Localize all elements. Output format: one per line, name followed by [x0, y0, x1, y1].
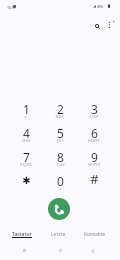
button[interactable]: Kontakte — [76, 231, 114, 241]
staticText: Letzte — [51, 231, 66, 238]
button[interactable]: Letzte — [39, 231, 77, 241]
button[interactable]: More options — [102, 18, 118, 34]
button[interactable]: 9 — [77, 147, 111, 171]
staticText: ∞ — [24, 114, 28, 119]
button[interactable]: Recents — [14, 243, 34, 260]
staticText: 49% — [97, 5, 104, 9]
staticText: 3 — [91, 101, 98, 117]
button[interactable]: 6 — [77, 123, 111, 147]
staticText: 16:37 — [7, 5, 16, 9]
button[interactable]: 7 — [9, 147, 43, 171]
staticText: GHI — [22, 138, 31, 144]
staticText: 8 — [57, 149, 64, 165]
staticText: WXYZ — [88, 162, 101, 168]
button[interactable]: Home — [50, 243, 70, 260]
staticText: 4 — [23, 125, 30, 141]
button[interactable]: Tastatur — [3, 231, 41, 241]
staticText: ABC — [55, 114, 65, 120]
button[interactable]: 8 — [43, 147, 77, 171]
staticText: DEF — [90, 114, 99, 120]
staticText: MNO — [88, 138, 100, 144]
button[interactable]: # — [77, 171, 111, 195]
staticText: 9 — [91, 149, 98, 165]
staticText: TUV — [56, 162, 65, 168]
staticText: 0 — [57, 173, 64, 189]
staticText: 5 — [57, 125, 64, 141]
button[interactable]: Call — [48, 198, 70, 220]
staticText: Kontakte — [84, 231, 106, 238]
staticText: 2 — [57, 101, 64, 117]
button[interactable]: Back — [83, 243, 103, 260]
staticText: 7 — [23, 149, 30, 165]
button[interactable]: 2 — [43, 99, 77, 123]
button[interactable]: ✱ — [9, 171, 43, 195]
button[interactable]: 5 — [43, 123, 77, 147]
button[interactable]: 0 — [43, 171, 77, 195]
staticText: PQRS — [20, 162, 32, 168]
button[interactable]: 1 — [9, 99, 43, 123]
staticText: Tastatur — [12, 231, 32, 238]
staticText: JKL — [57, 138, 64, 144]
button[interactable]: 3 — [77, 99, 111, 123]
staticText: ✱ — [22, 175, 31, 187]
button[interactable]: Search — [89, 18, 105, 34]
button[interactable]: 4 — [9, 123, 43, 147]
staticText: 1 — [23, 101, 30, 117]
staticText: + — [59, 186, 62, 192]
staticText: # — [90, 170, 99, 188]
staticText: 6 — [91, 125, 98, 141]
